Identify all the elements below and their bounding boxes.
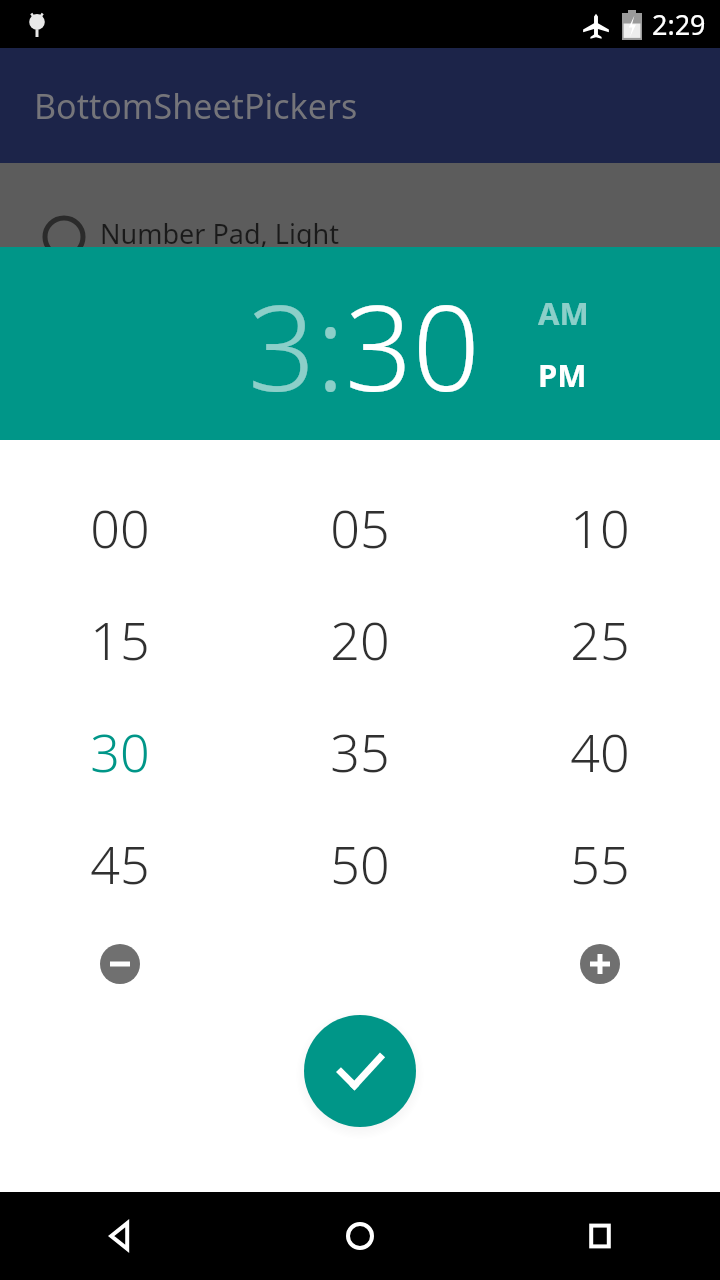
staticText: 10 [570, 492, 630, 563]
button[interactable]: Confirm time [304, 1015, 416, 1127]
button[interactable]: Recent apps [480, 1192, 720, 1280]
staticText: 20 [330, 604, 390, 675]
staticText: 55 [570, 828, 630, 899]
button[interactable]: 45 [0, 807, 240, 919]
button[interactable]: 00 [0, 471, 240, 583]
button[interactable]: 30 [345, 265, 480, 426]
button[interactable]: 25 [480, 583, 720, 695]
staticText: 25 [570, 604, 630, 675]
button[interactable]: 35 [240, 695, 480, 807]
button[interactable]: Decrement [100, 944, 140, 984]
button[interactable]: 50 [240, 807, 480, 919]
staticText: 15 [90, 604, 150, 675]
staticText: AM [538, 292, 589, 334]
staticText: BottomSheetPickers [34, 83, 358, 129]
button[interactable]: 30 [0, 695, 240, 807]
button[interactable]: Home [240, 1192, 480, 1280]
staticText: 50 [330, 828, 390, 899]
button[interactable]: 05 [240, 471, 480, 583]
staticText: 05 [330, 492, 390, 563]
button[interactable]: 40 [480, 695, 720, 807]
staticText: 45 [90, 828, 150, 899]
button[interactable]: Back [0, 1192, 240, 1280]
staticText: PM [538, 354, 587, 396]
button[interactable]: Increment [580, 944, 620, 984]
staticText: 35 [330, 716, 390, 787]
staticText: 40 [570, 716, 630, 787]
button[interactable]: 55 [480, 807, 720, 919]
staticText: : [316, 265, 345, 426]
button[interactable]: 10 [480, 471, 720, 583]
button[interactable]: AM [538, 292, 589, 334]
staticText: 00 [90, 492, 150, 563]
button[interactable]: 3 [248, 265, 316, 426]
staticText: 2:29 [652, 6, 706, 43]
button[interactable]: 15 [0, 583, 240, 695]
staticText: 30 [90, 716, 150, 787]
button[interactable]: 20 [240, 583, 480, 695]
button[interactable]: PM [538, 354, 587, 396]
staticText: Number Pad, Light [100, 215, 339, 252]
